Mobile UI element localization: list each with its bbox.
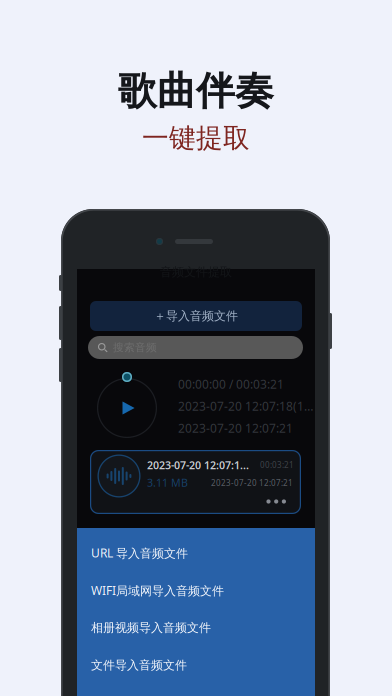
button[interactable]: 搜索音频 [88, 336, 303, 359]
button[interactable]: URL 导入音频文件 [77, 534, 315, 571]
staticText: 2023-07-20 12:07:18(1).... [178, 398, 314, 414]
staticText: 2023-07-20 12:07:21 [211, 478, 293, 488]
staticText: 00:03:21 [260, 460, 294, 470]
staticText: 音频文件提取 [160, 265, 232, 279]
staticText: 3.11 MB [147, 475, 188, 490]
button[interactable]: 文件导入音频文件 [77, 646, 315, 684]
staticText: 2023-07-20 12:07:21 [178, 420, 293, 436]
staticText: 搜索音频 [113, 341, 157, 354]
staticText: WIFI局域网导入音频文件 [91, 582, 224, 598]
staticText: 歌曲伴奏 [118, 67, 274, 115]
staticText: 文件导入音频文件 [91, 658, 187, 673]
staticText: 2023-07-20 12:07:1... [147, 458, 249, 472]
button[interactable]: 2023-07-20 12:07:1... [90, 450, 301, 514]
button[interactable]: 相册视频导入音频文件 [77, 609, 315, 646]
button[interactable]: WIFI局域网导入音频文件 [77, 571, 315, 609]
staticText: 相册视频导入音频文件 [91, 620, 211, 635]
staticText: URL 导入音频文件 [91, 545, 188, 561]
staticText: 00:00:00 / 00:03:21 [178, 376, 284, 392]
staticText: ＋导入音频文件 [154, 309, 238, 323]
staticText: 一键提取 [142, 122, 250, 154]
button[interactable]: ＋导入音频文件 [90, 301, 302, 331]
